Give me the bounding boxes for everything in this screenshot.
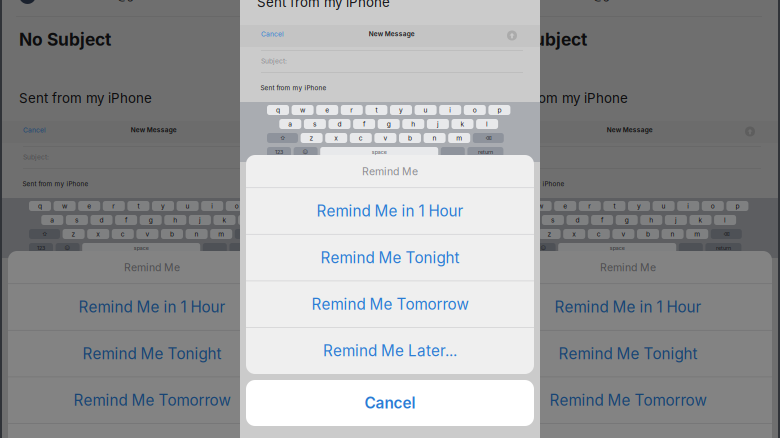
staticText: e (325, 106, 329, 114)
staticText: Subject: (23, 153, 49, 161)
staticText: k (222, 216, 226, 224)
staticText: o (711, 202, 715, 210)
staticText: ⇧ (280, 135, 285, 141)
staticText: ⌫ (247, 231, 253, 237)
staticText: No Subject (19, 29, 111, 50)
button[interactable]: Remind Me Tomorrow (484, 377, 772, 423)
staticText: b (408, 134, 412, 142)
button[interactable]: Remind Me Tonight (8, 331, 296, 376)
button[interactable]: Cancel (261, 30, 284, 38)
button[interactable]: Remind Me in 1 Hour (8, 284, 296, 330)
staticText: Remind Me Later... (323, 342, 457, 360)
staticText: Cancel (499, 126, 522, 134)
staticText: v (621, 230, 625, 238)
button[interactable]: Remind Me in 1 Hour (484, 284, 772, 330)
staticText: b (646, 230, 650, 238)
staticText: e (87, 202, 91, 210)
staticText: k (698, 216, 702, 224)
button[interactable]: Remind Me Later... (246, 328, 534, 374)
button[interactable]: Remind Me in 1 Hour (246, 188, 534, 234)
staticText: v (383, 134, 387, 142)
staticText: Cancel (23, 126, 46, 134)
staticText: y (399, 106, 403, 114)
staticText: z (310, 134, 314, 142)
button[interactable]: Remind Me Later... (8, 424, 296, 438)
staticText: Remind Me in 1 Hour (554, 298, 701, 316)
staticText: Subject: (499, 153, 525, 161)
staticText: o (473, 106, 477, 114)
staticText: p (735, 202, 739, 210)
staticText: › (276, 0, 281, 3)
staticText: e (563, 202, 567, 210)
staticText: x (96, 230, 100, 238)
staticText: b (170, 230, 174, 238)
staticText: space (134, 245, 149, 251)
staticText: ⌫ (723, 231, 729, 237)
staticText: ⇧ (518, 231, 523, 237)
staticText: c (597, 230, 601, 238)
button[interactable]: Send (269, 126, 279, 136)
staticText: j (199, 216, 201, 224)
staticText: Remind Me (362, 165, 418, 178)
button[interactable]: Cancel (499, 126, 522, 134)
staticText: x (572, 230, 576, 238)
staticText: z (548, 230, 552, 238)
staticText: 123 (37, 245, 45, 251)
staticText: w (62, 202, 67, 210)
staticText: c (359, 134, 363, 142)
staticText: v (145, 230, 149, 238)
button[interactable]: Send (745, 126, 755, 136)
staticText: ☺ (65, 245, 71, 251)
staticText: Sent from my iPhone (261, 84, 327, 92)
button[interactable]: Remind Me Tomorrow (8, 377, 296, 423)
staticText: r (112, 202, 115, 210)
staticText: j (675, 216, 677, 224)
staticText: m (694, 230, 700, 238)
staticText: f (601, 216, 603, 224)
staticText: n (671, 230, 675, 238)
staticText: m (218, 230, 224, 238)
staticText: New Message (369, 30, 415, 38)
staticText: f (125, 216, 127, 224)
staticText: u (424, 106, 428, 114)
staticText: 123 (275, 149, 283, 155)
staticText: Cancel (364, 394, 415, 412)
staticText: ☺ (541, 245, 547, 251)
staticText: i (449, 106, 451, 114)
staticText: l (486, 120, 488, 128)
button[interactable]: Remind Me Tonight (484, 331, 772, 376)
button[interactable]: Cancel (23, 126, 46, 134)
staticText: ☺ (303, 149, 309, 155)
staticText: Cancel (261, 30, 284, 38)
staticText: i (211, 202, 213, 210)
button[interactable]: Send (507, 30, 517, 40)
staticText: u (662, 202, 666, 210)
staticText: m (456, 134, 462, 142)
staticText: h (173, 216, 177, 224)
staticText: space (610, 245, 625, 251)
staticText: a (50, 216, 54, 224)
staticText: i (687, 202, 689, 210)
staticText: Remind Me Tomorrow (549, 391, 706, 409)
staticText: t (137, 202, 139, 210)
staticText: Remind Me Tonight (82, 344, 221, 363)
button[interactable]: Remind Me Tomorrow (246, 281, 534, 327)
button[interactable]: Remind Me Later... (484, 424, 772, 438)
staticText: u (186, 202, 190, 210)
staticText: return (716, 245, 731, 251)
staticText: k (460, 120, 464, 128)
staticText: t (613, 202, 615, 210)
staticText: a (288, 120, 292, 128)
staticText: g (387, 120, 391, 128)
button[interactable]: Remind Me Tonight (246, 235, 534, 280)
staticText: n (433, 134, 437, 142)
staticText: Remind Me (600, 261, 656, 274)
button[interactable]: Cancel (246, 380, 534, 426)
staticText: z (72, 230, 76, 238)
staticText: Remind Me Tomorrow (311, 295, 468, 313)
